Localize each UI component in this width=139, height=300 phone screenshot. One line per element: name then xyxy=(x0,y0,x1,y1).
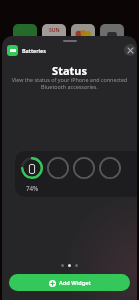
staticText: 74% xyxy=(26,184,39,192)
staticText: SUN xyxy=(49,27,60,34)
staticText: View the status of your iPhone and conne… xyxy=(6,76,133,91)
staticText: Add Widget xyxy=(59,279,91,287)
staticText: Status xyxy=(2,63,137,78)
button[interactable]: Close xyxy=(124,44,136,56)
staticText: Batteries xyxy=(22,47,46,54)
button[interactable]: Add Widget xyxy=(9,274,130,291)
